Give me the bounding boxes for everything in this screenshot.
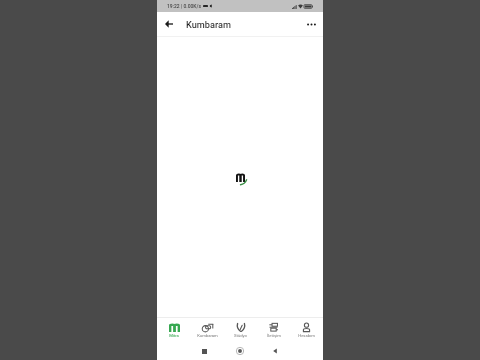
button[interactable]: Back [161, 16, 177, 32]
staticText: Stüdyo [234, 333, 247, 338]
staticText: Kumbaram [197, 333, 218, 338]
button[interactable]: Back [257, 344, 292, 358]
staticText: Mitra [169, 333, 179, 338]
staticText: Kumbaram [186, 19, 232, 30]
staticText: 19:22 | 0.00K/s [167, 3, 202, 9]
button[interactable]: More options [303, 16, 319, 32]
button[interactable]: Kumbaram [191, 318, 224, 344]
button[interactable]: Mitra [157, 318, 191, 344]
button[interactable]: İletişim [257, 318, 290, 344]
staticText: Hesabım [298, 333, 315, 338]
button[interactable]: Recents [187, 344, 222, 358]
button[interactable]: Home [222, 344, 257, 358]
button[interactable]: Hesabım [290, 318, 323, 344]
staticText: İletişim [267, 333, 281, 338]
button[interactable]: Stüdyo [224, 318, 257, 344]
